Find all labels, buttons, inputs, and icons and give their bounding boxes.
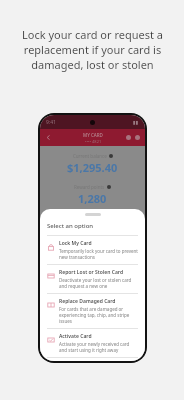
button[interactable]: Choose PIN [40, 358, 145, 361]
button[interactable]: Replace Damaged Card [40, 294, 145, 328]
staticText: ▮▮ [133, 119, 139, 125]
staticText: Current balance [73, 153, 107, 159]
staticText: Reward points [74, 184, 105, 190]
button[interactable]: Lock My Card [40, 236, 145, 264]
staticText: 9:41 [46, 119, 56, 126]
staticText: Deactivate your lost or stolen card and … [59, 277, 138, 289]
staticText: For cards that are damaged or experienci… [59, 306, 138, 324]
staticText: Temporarily lock your card to prevent ne… [59, 248, 138, 260]
staticText: 1,280 [78, 191, 107, 206]
staticText: Lock My Card [59, 240, 92, 247]
staticText: Report Lost or Stolen Card [59, 269, 124, 276]
staticText: Activate Card [59, 333, 92, 340]
staticText: $1,295.40 [67, 160, 118, 175]
button[interactable]: Activate Card [40, 329, 145, 357]
staticText: •••• 4821 [85, 139, 102, 144]
staticText: MY CARD [83, 132, 103, 138]
staticText: Select an option [47, 222, 94, 230]
button[interactable]: Report Lost or Stolen Card [40, 265, 145, 293]
staticText: Activate your newly received card and st… [59, 341, 138, 353]
staticText: Replace Damaged Card [59, 298, 116, 305]
staticText: Lock your card or request a replacement … [22, 27, 163, 72]
